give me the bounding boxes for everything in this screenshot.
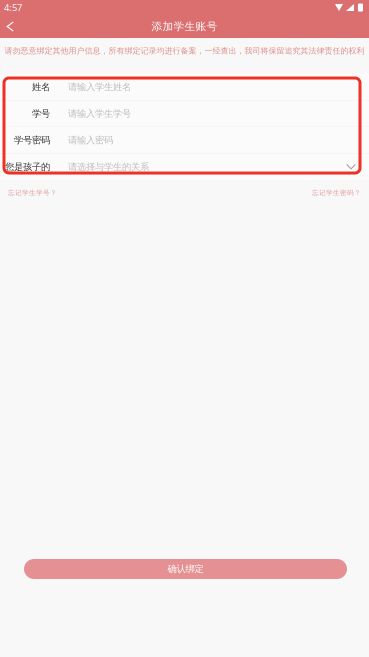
staticText: 请输入密码 xyxy=(68,134,113,146)
staticText: 学号 xyxy=(32,108,50,119)
staticText: 忘记学生学号？ xyxy=(8,189,57,197)
staticText: 添加学生账号 xyxy=(151,20,217,33)
button[interactable]: Back xyxy=(0,16,24,37)
button[interactable]: 忘记学生密码？ xyxy=(312,186,361,200)
button[interactable]: 您是孩子的 xyxy=(0,154,369,180)
staticText: 确认绑定 xyxy=(167,563,203,575)
button[interactable]: 学号 xyxy=(0,101,369,127)
staticText: 忘记学生密码？ xyxy=(312,189,361,197)
button[interactable]: 姓名 xyxy=(0,74,369,100)
staticText: 4:57 xyxy=(4,1,22,14)
staticText: 请勿恶意绑定其他用户信息，所有绑定记录均进行备案，一经查出，我司将保留追究其法律… xyxy=(4,46,364,56)
staticText: 学号密码 xyxy=(14,134,50,146)
staticText: 您是孩子的 xyxy=(5,161,50,173)
button[interactable]: 确认绑定 xyxy=(24,559,347,579)
staticText: 请输入学生学号 xyxy=(68,108,131,119)
staticText: 请选择与学生的关系 xyxy=(68,161,149,173)
button[interactable]: 学号密码 xyxy=(0,127,369,153)
staticText: 请输入学生姓名 xyxy=(68,81,131,93)
staticText: 姓名 xyxy=(32,81,50,93)
button[interactable]: 忘记学生学号？ xyxy=(8,186,57,200)
